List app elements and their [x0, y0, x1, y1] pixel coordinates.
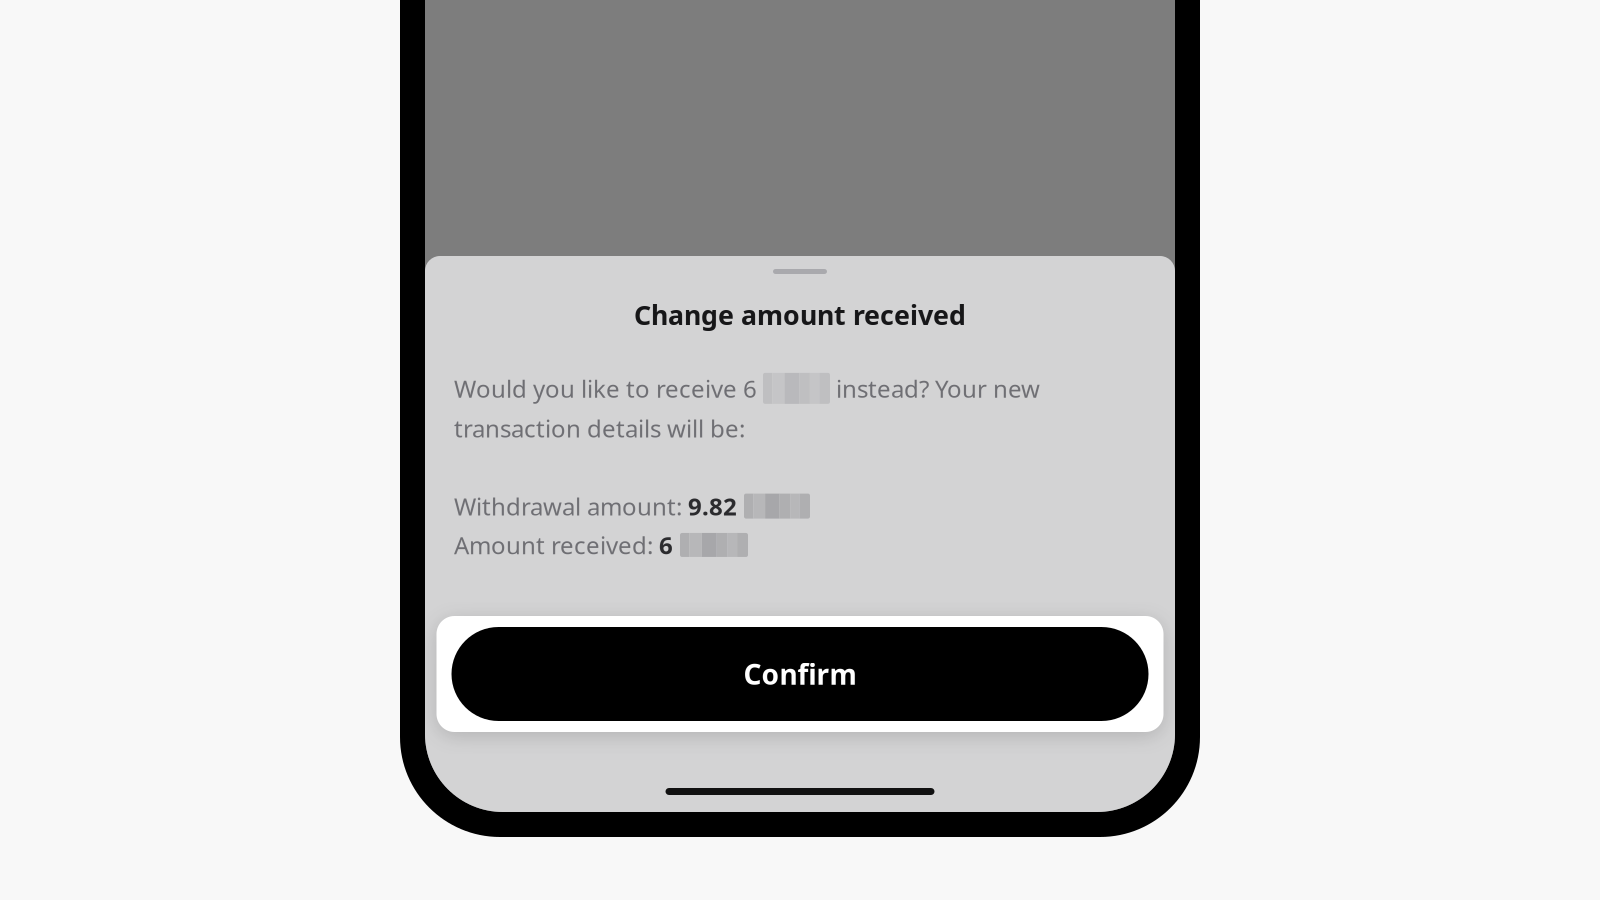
- staticText: 6: [659, 529, 673, 561]
- staticText: Withdrawal amount:: [454, 490, 688, 522]
- staticText: Confirm: [743, 655, 856, 693]
- staticText: Amount received:: [454, 529, 659, 561]
- staticText: 9.82: [688, 490, 737, 522]
- staticText: transaction details will be:: [454, 412, 745, 444]
- button[interactable]: Dismiss sheet: [773, 256, 827, 274]
- staticText: Change amount received: [634, 297, 966, 332]
- staticText: Would you like to receive 6: [454, 372, 757, 404]
- staticText: instead? Your new: [836, 372, 1040, 404]
- button[interactable]: Confirm: [436, 616, 1163, 732]
